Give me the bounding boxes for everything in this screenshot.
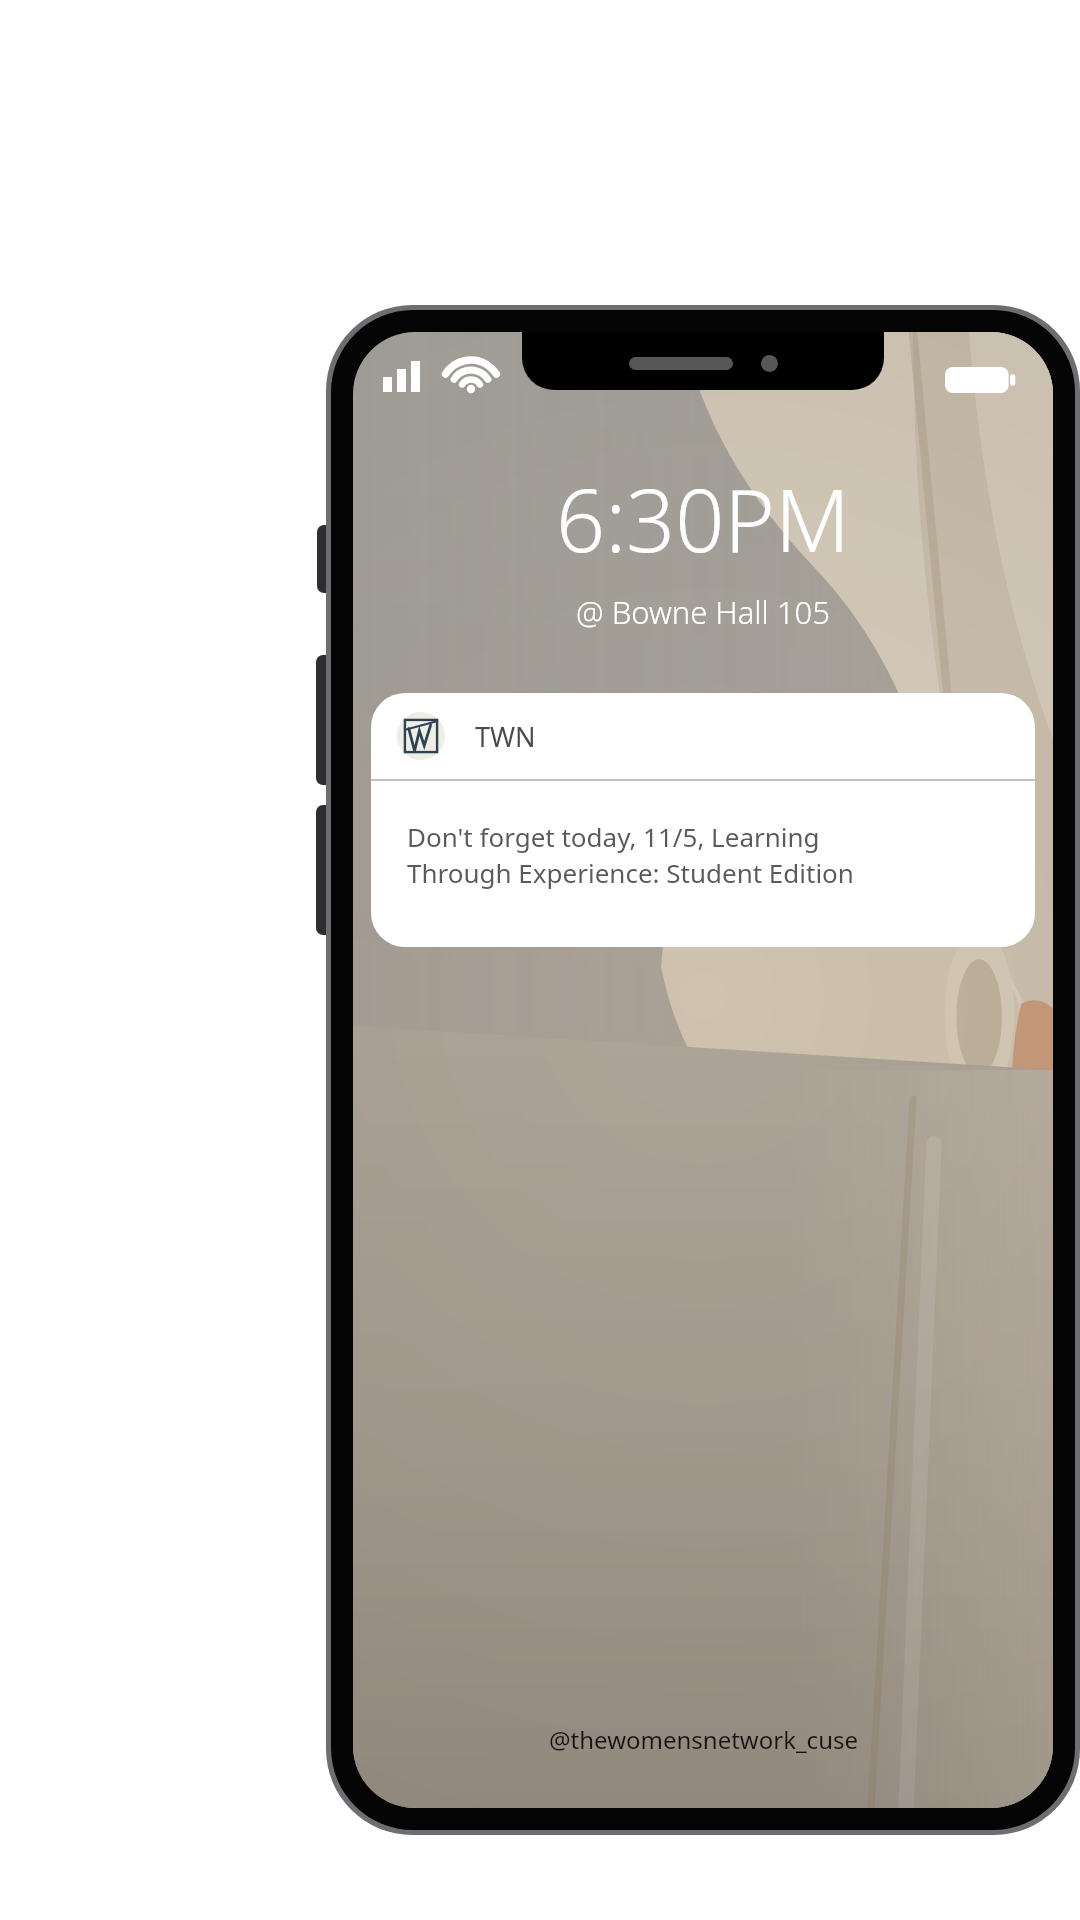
staticText: TWN [475,718,536,755]
staticText: Don't forget today, 11/5, Learning Throu… [407,819,854,891]
button[interactable]: Volume down [316,805,333,935]
button[interactable]: Volume up [316,655,333,785]
staticText: @ Bowne Hall 105 [576,591,830,633]
button[interactable]: Power [1073,705,1080,880]
button[interactable]: Silent switch [317,525,333,593]
staticText: @thewomensnetwork_cuse [549,1723,858,1756]
button[interactable]: TWN [371,693,1035,947]
staticText: 6:30PM [556,460,850,577]
